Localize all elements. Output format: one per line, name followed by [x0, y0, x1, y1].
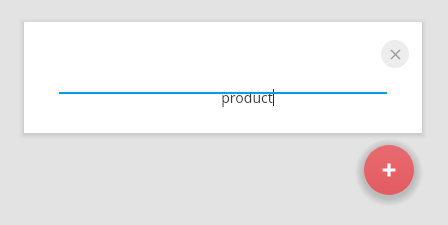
button[interactable]: Close — [381, 40, 409, 68]
staticText: product — [221, 88, 273, 107]
button[interactable]: product — [83, 82, 411, 112]
button[interactable]: Add — [364, 145, 414, 195]
